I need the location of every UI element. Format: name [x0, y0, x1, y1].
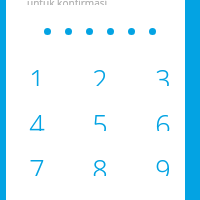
button[interactable]: Digit 7	[0, 151, 74, 176]
staticText: 2	[92, 61, 108, 86]
button[interactable]: Digit 8	[74, 151, 126, 176]
staticText: 1	[29, 61, 45, 86]
staticText: 4	[29, 106, 45, 131]
staticText: 3	[155, 61, 171, 86]
staticText: 6	[155, 106, 171, 131]
button[interactable]: Digit 5	[74, 106, 126, 131]
button[interactable]: Digit 2	[74, 61, 126, 86]
staticText: 8	[92, 151, 108, 176]
button[interactable]: Digit 6	[126, 106, 200, 131]
staticText: 9	[155, 151, 171, 176]
button[interactable]: Digit 9	[126, 151, 200, 176]
staticText: 5	[92, 106, 108, 131]
button[interactable]: Digit 1	[0, 61, 74, 86]
button[interactable]: Digit 4	[0, 106, 74, 131]
staticText: untuk konfirmasi.	[27, 0, 110, 5]
button[interactable]: Digit 3	[126, 61, 200, 86]
staticText: 7	[29, 151, 45, 176]
